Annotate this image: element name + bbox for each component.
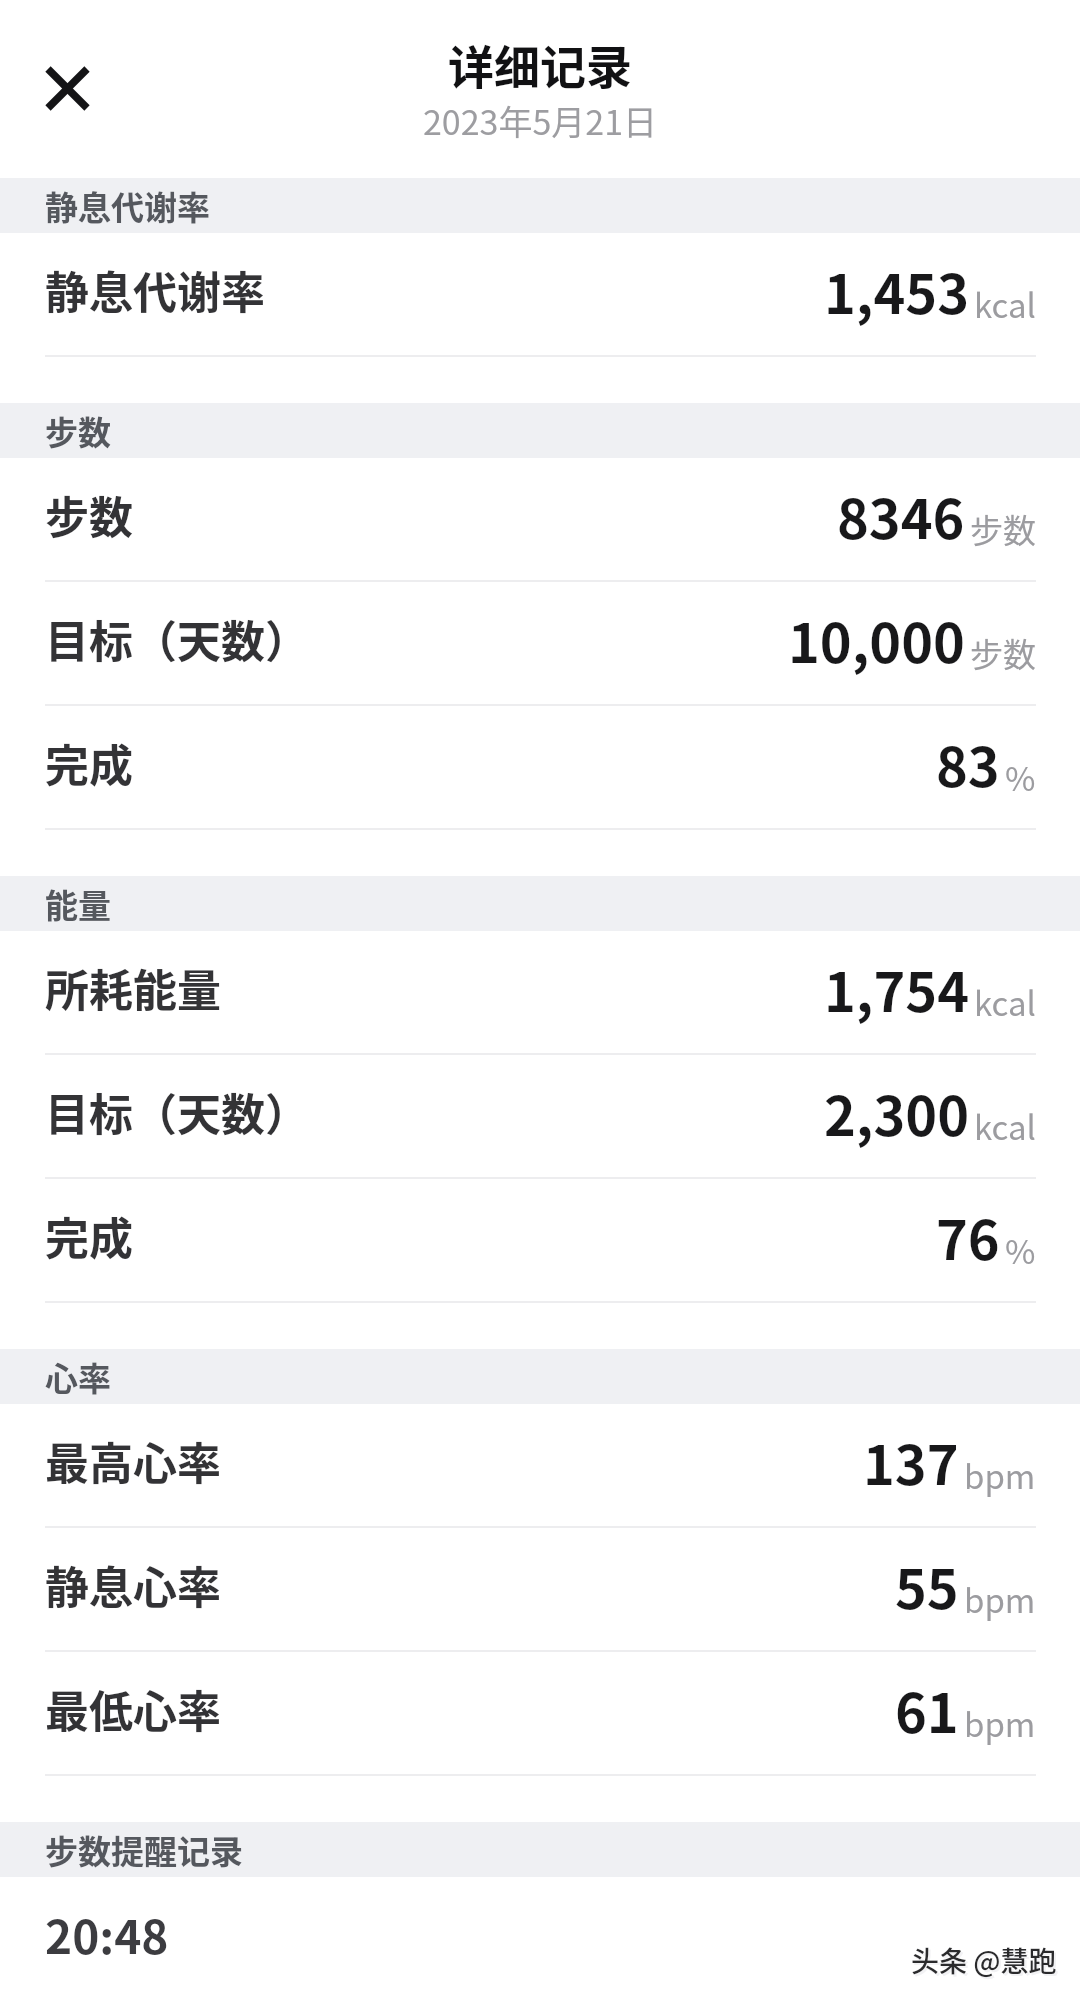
- staticText: 完成: [45, 731, 133, 795]
- button[interactable]: 完成: [0, 706, 1080, 830]
- staticText: 最低心率: [45, 1677, 221, 1741]
- button[interactable]: 静息代谢率: [0, 233, 1080, 357]
- staticText: bpm: [964, 1451, 1036, 1499]
- staticText: 步数提醒记录: [45, 1826, 243, 1874]
- staticText: 最高心率: [45, 1429, 221, 1493]
- button[interactable]: 静息心率: [0, 1528, 1080, 1652]
- button[interactable]: 最高心率: [0, 1404, 1080, 1528]
- staticText: bpm: [964, 1575, 1036, 1623]
- staticText: 2,300: [824, 1073, 969, 1151]
- staticText: %: [1005, 753, 1036, 801]
- staticText: 目标（天数）: [45, 1080, 309, 1144]
- staticText: 1,453: [824, 251, 969, 329]
- staticText: 目标（天数）: [45, 607, 309, 671]
- staticText: 详细记录: [448, 31, 632, 98]
- button[interactable]: 20:48: [0, 1877, 1080, 2001]
- staticText: 61: [895, 1670, 959, 1748]
- button[interactable]: 所耗能量: [0, 931, 1080, 1055]
- button[interactable]: 步数: [0, 403, 1080, 458]
- button[interactable]: 步数: [0, 458, 1080, 582]
- staticText: 步数: [45, 407, 111, 455]
- staticText: kcal: [974, 280, 1036, 328]
- button[interactable]: 最低心率: [0, 1652, 1080, 1776]
- staticText: 1,754: [824, 949, 969, 1027]
- button[interactable]: Close: [23, 44, 111, 132]
- staticText: 静息代谢率: [45, 258, 265, 322]
- staticText: 所耗能量: [45, 956, 221, 1020]
- staticText: 137: [863, 1422, 959, 1500]
- staticText: 76: [936, 1197, 1000, 1275]
- staticText: 静息代谢率: [45, 182, 210, 230]
- staticText: 55: [895, 1546, 959, 1624]
- staticText: %: [1005, 1226, 1036, 1274]
- staticText: 10,000: [788, 600, 965, 678]
- staticText: 8346: [837, 476, 965, 554]
- staticText: 步数: [970, 505, 1036, 553]
- button[interactable]: 静息代谢率: [0, 178, 1080, 233]
- staticText: 头条 @慧跑: [911, 1940, 1057, 1981]
- staticText: kcal: [974, 1102, 1036, 1150]
- staticText: 完成: [45, 1204, 133, 1268]
- button[interactable]: 步数提醒记录: [0, 1822, 1080, 1877]
- staticText: kcal: [974, 978, 1036, 1026]
- staticText: 头条 @慧跑: [913, 1942, 1059, 1983]
- staticText: 能量: [45, 880, 111, 928]
- staticText: 20:48: [45, 1901, 169, 1968]
- button[interactable]: 完成: [0, 1179, 1080, 1303]
- button[interactable]: 目标（天数）: [0, 1055, 1080, 1179]
- button[interactable]: 目标（天数）: [0, 582, 1080, 706]
- staticText: 83: [936, 724, 1000, 802]
- staticText: 步数: [970, 629, 1036, 677]
- button[interactable]: 能量: [0, 876, 1080, 931]
- staticText: bpm: [964, 1699, 1036, 1747]
- staticText: 2023年5月21日: [423, 96, 658, 145]
- staticText: 心率: [45, 1353, 111, 1401]
- staticText: 步数: [45, 483, 133, 547]
- button[interactable]: 心率: [0, 1349, 1080, 1404]
- staticText: 静息心率: [45, 1553, 221, 1617]
